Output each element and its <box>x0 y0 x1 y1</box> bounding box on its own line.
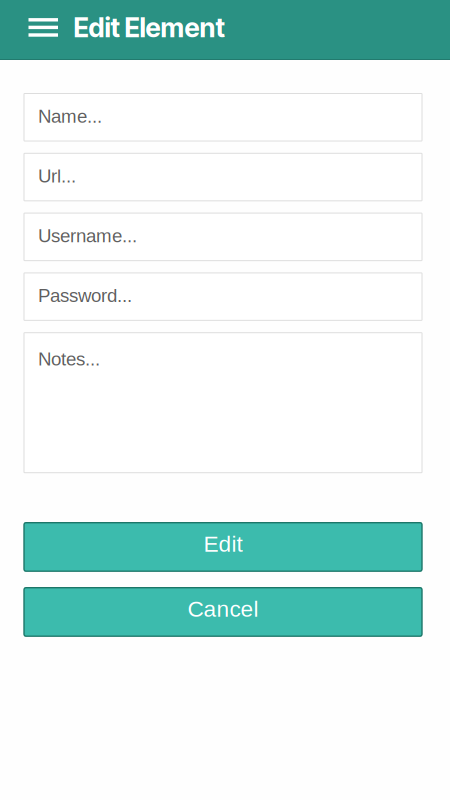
button[interactable]: Cancel <box>24 588 422 636</box>
button[interactable]: Username... <box>24 213 422 261</box>
staticText: Password... <box>38 285 132 306</box>
button[interactable]: Menu <box>0 0 73 60</box>
staticText: Cancel <box>187 596 258 622</box>
button[interactable]: Password... <box>24 273 422 320</box>
staticText: Edit Element <box>73 11 224 44</box>
button[interactable]: Notes... <box>24 333 422 473</box>
staticText: Username... <box>38 225 137 246</box>
button[interactable]: Url... <box>24 153 422 201</box>
staticText: Edit <box>203 531 242 557</box>
button[interactable]: Edit <box>24 523 422 571</box>
staticText: Notes... <box>38 349 100 370</box>
staticText: Url... <box>38 166 76 186</box>
button[interactable]: Name... <box>24 93 422 141</box>
staticText: Name... <box>38 106 102 127</box>
